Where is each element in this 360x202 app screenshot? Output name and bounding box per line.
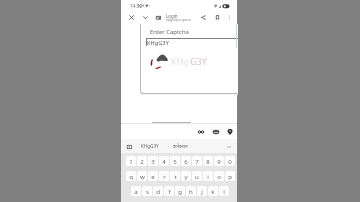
- button[interactable]: 3: [148, 156, 158, 166]
- button[interactable]: f: [164, 186, 174, 196]
- button[interactable]: i: [203, 171, 213, 181]
- button[interactable]: KHgG3Y: [141, 143, 159, 149]
- staticText: 6: [184, 157, 188, 165]
- staticText: k: [211, 187, 215, 195]
- button[interactable]: 9: [214, 156, 224, 166]
- button[interactable]: d: [153, 186, 163, 196]
- button[interactable]: 6: [181, 156, 191, 166]
- button[interactable]: 4: [159, 156, 169, 166]
- staticText: o: [217, 172, 221, 180]
- staticText: 2: [140, 157, 144, 165]
- button[interactable]: w: [137, 171, 147, 181]
- button[interactable]: Share: [197, 11, 209, 24]
- button[interactable]: h: [186, 186, 196, 196]
- button[interactable]: q: [126, 171, 136, 181]
- button[interactable]: 5: [170, 156, 180, 166]
- button[interactable]: g: [175, 186, 185, 196]
- staticText: d: [156, 187, 160, 195]
- button[interactable]: KHgG3Y: [146, 38, 238, 46]
- staticText: 9: [217, 157, 221, 165]
- staticText: t: [174, 172, 177, 180]
- staticText: KHgG3Y: [141, 143, 159, 149]
- staticText: f: [168, 187, 171, 195]
- button[interactable]: 7: [192, 156, 202, 166]
- staticText: 5: [173, 157, 177, 165]
- staticText: 7: [195, 157, 199, 165]
- button[interactable]: Passwords: [195, 126, 207, 138]
- staticText: y: [184, 172, 188, 180]
- button[interactable]: k: [208, 186, 218, 196]
- staticText: 3: [151, 157, 155, 165]
- button[interactable]: 8: [203, 156, 213, 166]
- staticText: 4: [162, 157, 166, 165]
- staticText: g: [178, 187, 182, 195]
- staticText: s: [146, 187, 149, 195]
- button[interactable]: कनेक्शन: [173, 143, 188, 149]
- button[interactable]: More options: [223, 11, 235, 24]
- staticText: l: [223, 187, 225, 195]
- staticText: कनेक्शन: [173, 143, 188, 149]
- button[interactable]: r: [159, 171, 169, 181]
- button[interactable]: y: [181, 171, 191, 181]
- staticText: 0: [228, 157, 232, 165]
- staticText: q: [129, 172, 133, 180]
- button[interactable]: 1: [126, 156, 136, 166]
- staticText: KHgG3Y: [147, 39, 169, 47]
- button[interactable]: Open in browser: [152, 11, 164, 24]
- button[interactable]: Minimize: [139, 11, 151, 24]
- staticText: 8: [206, 157, 210, 165]
- button[interactable]: e: [148, 171, 158, 181]
- button[interactable]: Close: [125, 11, 137, 24]
- button[interactable]: p: [225, 171, 235, 181]
- staticText: 14:52: [130, 3, 143, 10]
- staticText: w: [140, 172, 145, 180]
- button[interactable]: Bookmark: [211, 11, 223, 24]
- staticText: 1: [129, 157, 133, 165]
- staticText: e: [151, 172, 155, 180]
- staticText: a: [134, 187, 138, 195]
- staticText: u: [195, 172, 199, 180]
- staticText: r: [163, 172, 166, 180]
- staticText: Login: [166, 13, 178, 19]
- staticText: j: [201, 187, 203, 195]
- button[interactable]: Keyboard toolbar: [125, 142, 134, 151]
- button[interactable]: u: [192, 171, 202, 181]
- button[interactable]: 2: [137, 156, 147, 166]
- staticText: Enter Captcha: [150, 28, 189, 36]
- staticText: p: [228, 172, 232, 180]
- staticText: i: [207, 172, 209, 180]
- button[interactable]: Expand suggestions: [225, 143, 233, 151]
- button[interactable]: j: [197, 186, 207, 196]
- staticText: G3Y: [190, 55, 207, 67]
- button[interactable]: Payment methods: [210, 126, 222, 138]
- button[interactable]: s: [142, 186, 152, 196]
- button[interactable]: l: [219, 186, 229, 196]
- button[interactable]: a: [131, 186, 141, 196]
- button[interactable]: t: [170, 171, 180, 181]
- button[interactable]: Addresses: [224, 126, 236, 138]
- staticText: KHg: [171, 55, 189, 67]
- button[interactable]: 0: [225, 156, 235, 166]
- staticText: eapp.hpsc.gov.in: [166, 18, 192, 22]
- staticText: h: [189, 187, 193, 195]
- button[interactable]: o: [214, 171, 224, 181]
